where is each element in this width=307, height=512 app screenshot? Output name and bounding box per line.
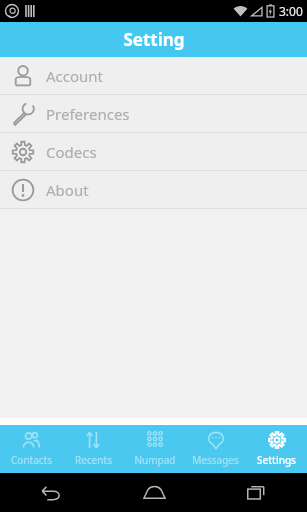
- button[interactable]: Numpad: [124, 425, 185, 473]
- button[interactable]: Contacts: [0, 425, 62, 473]
- button[interactable]: Recent apps: [205, 473, 307, 512]
- staticText: Setting: [123, 28, 185, 51]
- button[interactable]: Preferences: [0, 95, 307, 133]
- button[interactable]: Recents: [62, 425, 124, 473]
- staticText: Codecs: [46, 142, 97, 162]
- staticText: Account: [46, 66, 104, 86]
- button[interactable]: Account: [0, 57, 307, 95]
- staticText: Numpad: [134, 453, 176, 467]
- button[interactable]: Codecs: [0, 133, 307, 171]
- button[interactable]: Home: [103, 473, 205, 512]
- staticText: 3:00: [279, 3, 303, 19]
- button[interactable]: Messages: [185, 425, 246, 473]
- staticText: Contacts: [11, 453, 52, 467]
- staticText: Preferences: [46, 104, 130, 124]
- button[interactable]: About: [0, 171, 307, 209]
- button[interactable]: Back: [0, 473, 103, 512]
- staticText: Settings: [257, 453, 296, 467]
- staticText: Recents: [75, 453, 112, 467]
- staticText: Messages: [192, 453, 239, 467]
- button[interactable]: Settings: [246, 425, 307, 473]
- staticText: About: [46, 180, 89, 200]
